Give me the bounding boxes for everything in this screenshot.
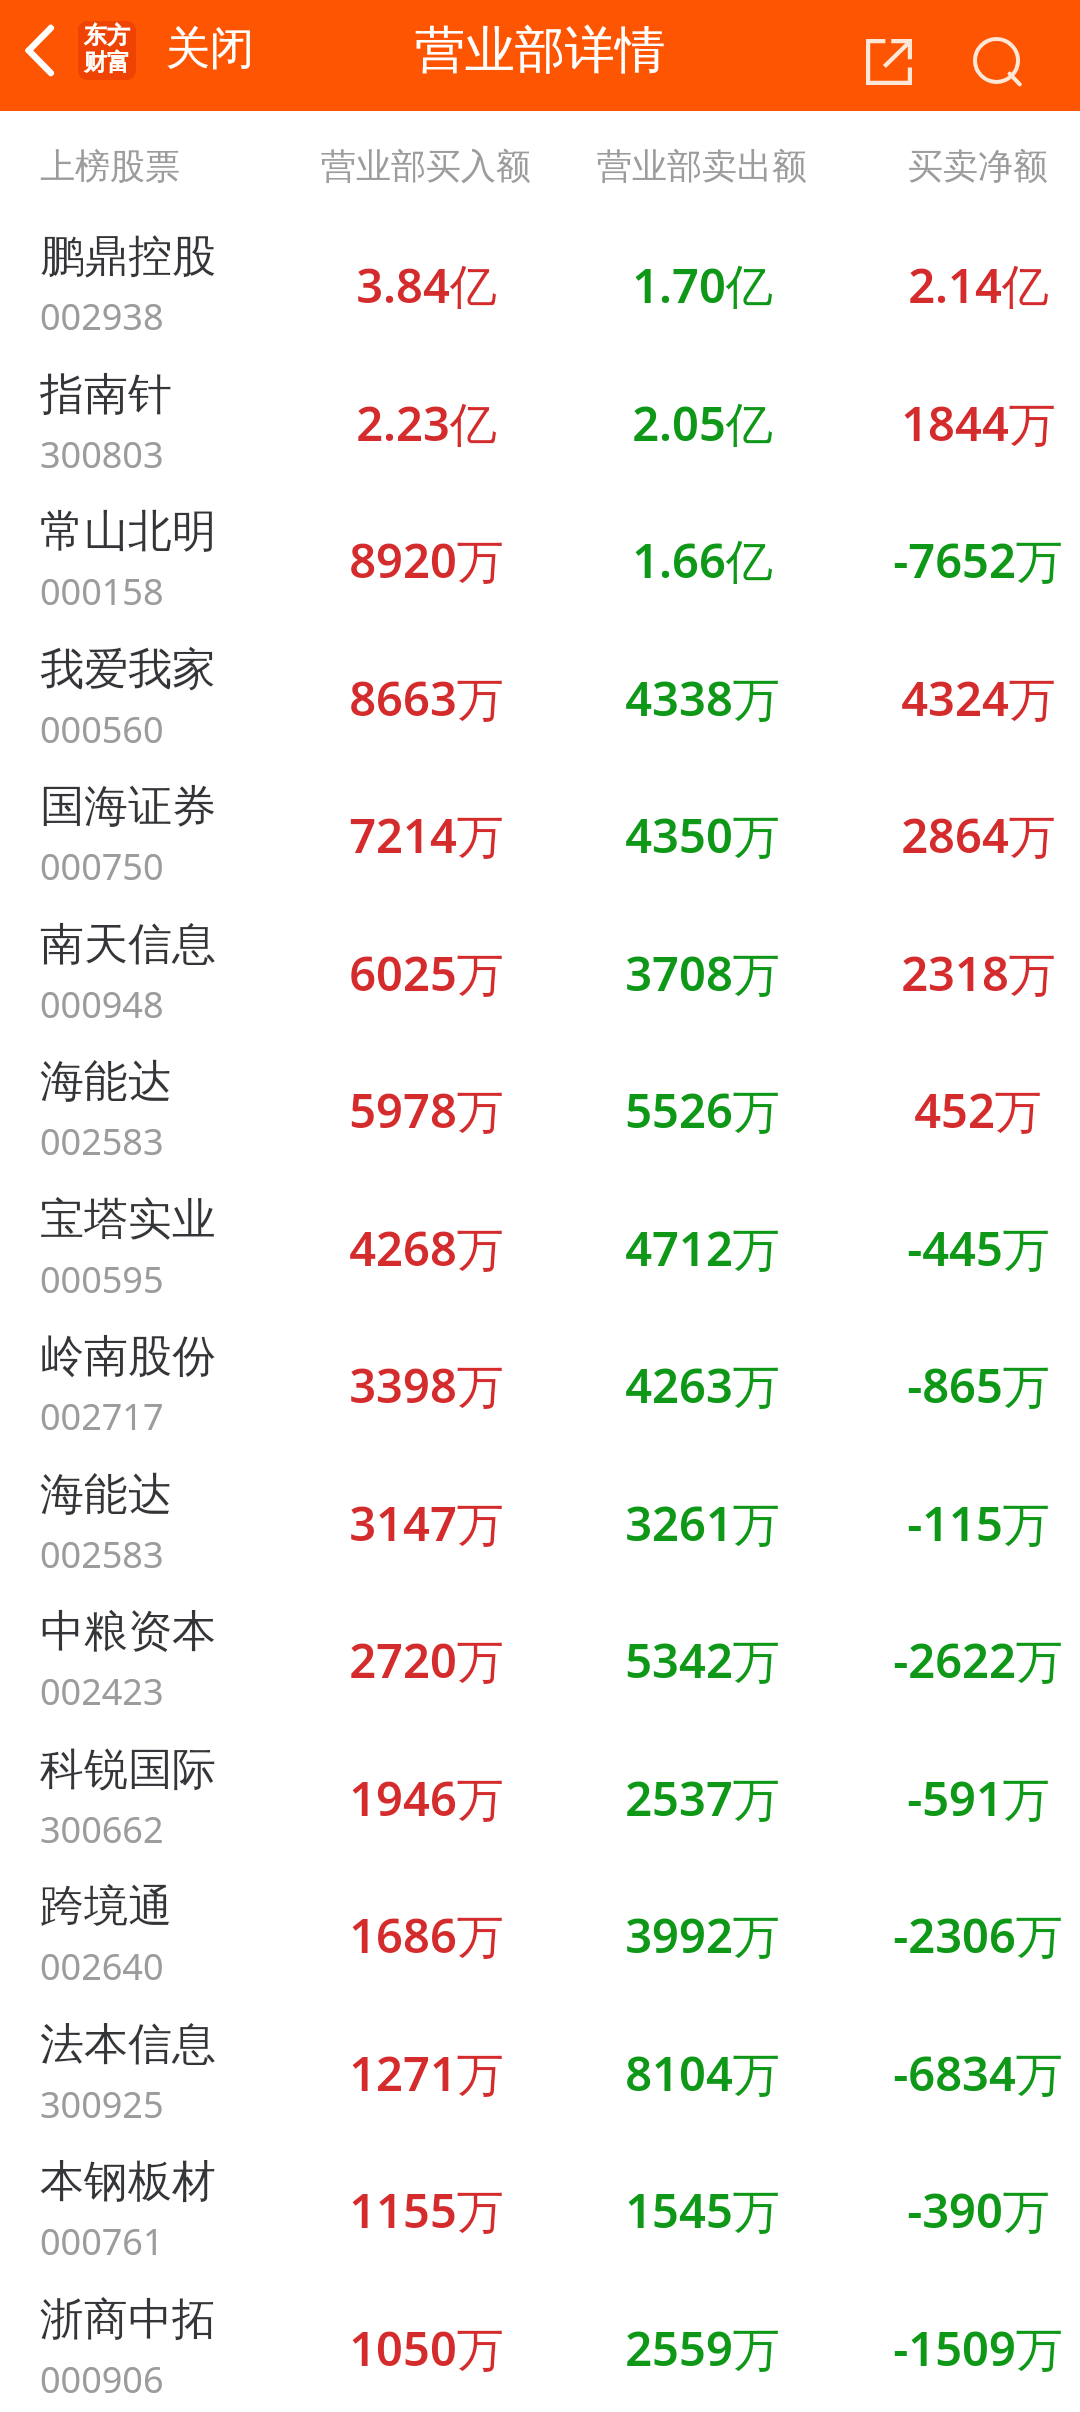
button[interactable]: 本钢板材 <box>0 2139 1080 2277</box>
button[interactable]: 国海证券 <box>0 764 1080 902</box>
staticText: 3261万 <box>625 1491 780 1555</box>
staticText: 1155万 <box>349 2178 504 2242</box>
staticText: 4712万 <box>625 1216 780 1280</box>
staticText: -115万 <box>907 1491 1050 1555</box>
staticText: 002640 <box>40 1942 164 1991</box>
staticText: 452万 <box>914 1078 1042 1142</box>
staticText: 南天信息 <box>40 917 216 972</box>
button[interactable]: 常山北明 <box>0 489 1080 627</box>
staticText: 3992万 <box>625 1903 780 1967</box>
staticText: 科锐国际 <box>40 1742 216 1797</box>
staticText: 1946万 <box>349 1766 504 1830</box>
staticText: 1545万 <box>625 2178 780 2242</box>
staticText: 6025万 <box>349 941 504 1005</box>
button[interactable]: 返回 <box>3 0 75 100</box>
staticText: 1.66亿 <box>632 528 773 592</box>
staticText: 2864万 <box>901 803 1056 867</box>
staticText: 营业部卖出额 <box>597 144 807 188</box>
button[interactable]: 宝塔实业 <box>0 1177 1080 1315</box>
staticText: 5342万 <box>625 1628 780 1692</box>
staticText: 002583 <box>40 1530 164 1579</box>
button[interactable]: 南天信息 <box>0 902 1080 1040</box>
staticText: 300662 <box>40 1805 164 1854</box>
staticText: 本钢板材 <box>40 2154 216 2209</box>
staticText: 002938 <box>40 292 164 341</box>
staticText: 3.84亿 <box>356 253 497 317</box>
staticText: -2306万 <box>893 1903 1063 1967</box>
staticText: 关闭 <box>166 21 254 76</box>
staticText: 5978万 <box>349 1078 504 1142</box>
staticText: 000560 <box>40 705 164 754</box>
staticText: 000158 <box>40 567 164 616</box>
staticText: 东方 <box>84 21 130 50</box>
staticText: 财富 <box>84 48 130 77</box>
staticText: 5526万 <box>625 1078 780 1142</box>
staticText: 2.14亿 <box>908 253 1049 317</box>
button[interactable]: 浙商中拓 <box>0 2277 1080 2412</box>
staticText: 1050万 <box>349 2316 504 2380</box>
button[interactable]: 鹏鼎控股 <box>0 214 1080 352</box>
button[interactable]: 中粮资本 <box>0 1589 1080 1727</box>
staticText: 浙商中拓 <box>40 2292 216 2347</box>
staticText: 300925 <box>40 2080 164 2129</box>
staticText: 000948 <box>40 980 164 1029</box>
staticText: 4324万 <box>901 666 1056 730</box>
staticText: 法本信息 <box>40 2017 216 2072</box>
staticText: 营业部详情 <box>415 19 665 82</box>
staticText: 002423 <box>40 1667 164 1716</box>
staticText: 2559万 <box>625 2316 780 2380</box>
button[interactable]: 指南针 <box>0 352 1080 490</box>
staticText: 4268万 <box>349 1216 504 1280</box>
staticText: 2.05亿 <box>632 391 773 455</box>
staticText: 中粮资本 <box>40 1604 216 1659</box>
staticText: 7214万 <box>349 803 504 867</box>
staticText: 宝塔实业 <box>40 1192 216 1247</box>
button[interactable]: 关闭 <box>160 0 260 96</box>
staticText: 指南针 <box>40 367 172 422</box>
staticText: 000906 <box>40 2355 164 2404</box>
staticText: 2537万 <box>625 1766 780 1830</box>
staticText: 岭南股份 <box>40 1329 216 1384</box>
staticText: 2318万 <box>901 941 1056 1005</box>
button[interactable]: 科锐国际 <box>0 1727 1080 1865</box>
staticText: 1844万 <box>901 391 1056 455</box>
staticText: -390万 <box>907 2178 1050 2242</box>
staticText: 国海证券 <box>40 779 216 834</box>
button[interactable]: 分享 <box>843 16 935 108</box>
staticText: 常山北明 <box>40 504 216 559</box>
button[interactable]: 岭南股份 <box>0 1314 1080 1452</box>
button[interactable]: 跨境通 <box>0 1864 1080 2002</box>
staticText: 000750 <box>40 842 164 891</box>
button[interactable]: 海能达 <box>0 1039 1080 1177</box>
staticText: 3708万 <box>625 941 780 1005</box>
staticText: 1.70亿 <box>632 253 773 317</box>
button[interactable]: 搜索 <box>951 15 1043 107</box>
staticText: 上榜股票 <box>40 144 180 188</box>
staticText: -865万 <box>907 1353 1050 1417</box>
staticText: -6834万 <box>893 2041 1063 2105</box>
staticText: 海能达 <box>40 1467 172 1522</box>
staticText: 002717 <box>40 1392 164 1441</box>
staticText: 000761 <box>40 2217 164 2266</box>
staticText: 4263万 <box>625 1353 780 1417</box>
staticText: -1509万 <box>893 2316 1063 2380</box>
staticText: 营业部买入额 <box>321 144 531 188</box>
staticText: 000595 <box>40 1255 164 1304</box>
staticText: 跨境通 <box>40 1879 172 1934</box>
staticText: 2.23亿 <box>356 391 497 455</box>
staticText: -591万 <box>907 1766 1050 1830</box>
button[interactable]: 法本信息 <box>0 2002 1080 2140</box>
button[interactable]: 海能达 <box>0 1452 1080 1590</box>
staticText: 海能达 <box>40 1054 172 1109</box>
staticText: 我爱我家 <box>40 642 216 697</box>
staticText: 8920万 <box>349 528 504 592</box>
staticText: 1271万 <box>349 2041 504 2105</box>
staticText: 4350万 <box>625 803 780 867</box>
staticText: 8663万 <box>349 666 504 730</box>
staticText: -445万 <box>907 1216 1050 1280</box>
staticText: 3147万 <box>349 1491 504 1555</box>
staticText: -7652万 <box>893 528 1063 592</box>
staticText: 2720万 <box>349 1628 504 1692</box>
staticText: 8104万 <box>625 2041 780 2105</box>
button[interactable]: 我爱我家 <box>0 627 1080 765</box>
